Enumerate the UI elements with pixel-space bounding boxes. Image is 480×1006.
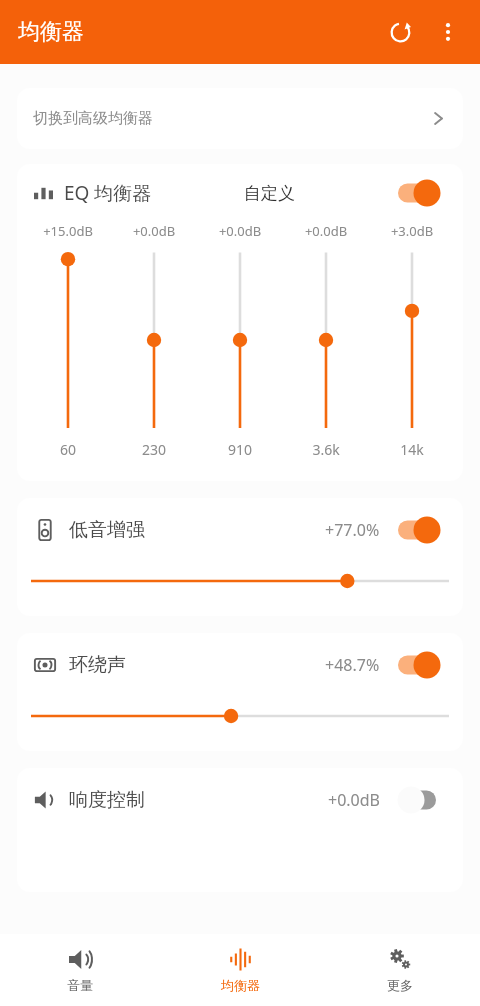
staticText: +0.0dB	[197, 222, 283, 240]
staticText: 均衡器	[221, 977, 260, 993]
staticText: +77.0%	[325, 519, 380, 541]
button[interactable]	[17, 697, 463, 735]
staticText: +3.0dB	[369, 222, 455, 240]
button[interactable]	[111, 252, 197, 428]
staticText: 低音增强	[69, 518, 145, 542]
button[interactable]: Toggle on	[396, 649, 450, 681]
staticText: 音量	[67, 977, 93, 993]
staticText: 14k	[369, 440, 455, 459]
staticText: 3.6k	[283, 440, 369, 459]
button[interactable]: 切换到高级均衡器	[17, 88, 463, 149]
button[interactable]	[17, 562, 463, 600]
staticText: +0.0dB	[283, 222, 369, 240]
button[interactable]	[197, 252, 283, 428]
staticText: +15.0dB	[25, 222, 111, 240]
staticText: 230	[111, 440, 197, 459]
button[interactable]: 均衡器	[160, 934, 320, 1006]
button[interactable]: Refresh	[376, 8, 424, 56]
button[interactable]	[369, 252, 455, 428]
staticText: 响度控制	[69, 788, 145, 812]
button[interactable]: Toggle off	[396, 784, 450, 816]
staticText: 均衡器	[18, 18, 84, 46]
staticText: +0.0dB	[111, 222, 197, 240]
staticText: 更多	[387, 977, 413, 993]
staticText: 910	[197, 440, 283, 459]
staticText: +48.7%	[325, 654, 380, 676]
staticText: 60	[25, 440, 111, 459]
button[interactable]	[283, 252, 369, 428]
button[interactable]: 更多	[320, 934, 480, 1006]
button[interactable]: 自定义	[244, 183, 295, 204]
staticText: 切换到高级均衡器	[33, 109, 153, 128]
button[interactable]: Toggle on	[396, 177, 450, 209]
button[interactable]: 音量	[0, 934, 160, 1006]
staticText: +0.0dB	[328, 789, 380, 811]
staticText: EQ 均衡器	[64, 180, 152, 206]
button[interactable]: Toggle on	[396, 514, 450, 546]
staticText: 环绕声	[69, 653, 126, 677]
button[interactable]	[25, 252, 111, 428]
button[interactable]: More options	[424, 8, 472, 56]
